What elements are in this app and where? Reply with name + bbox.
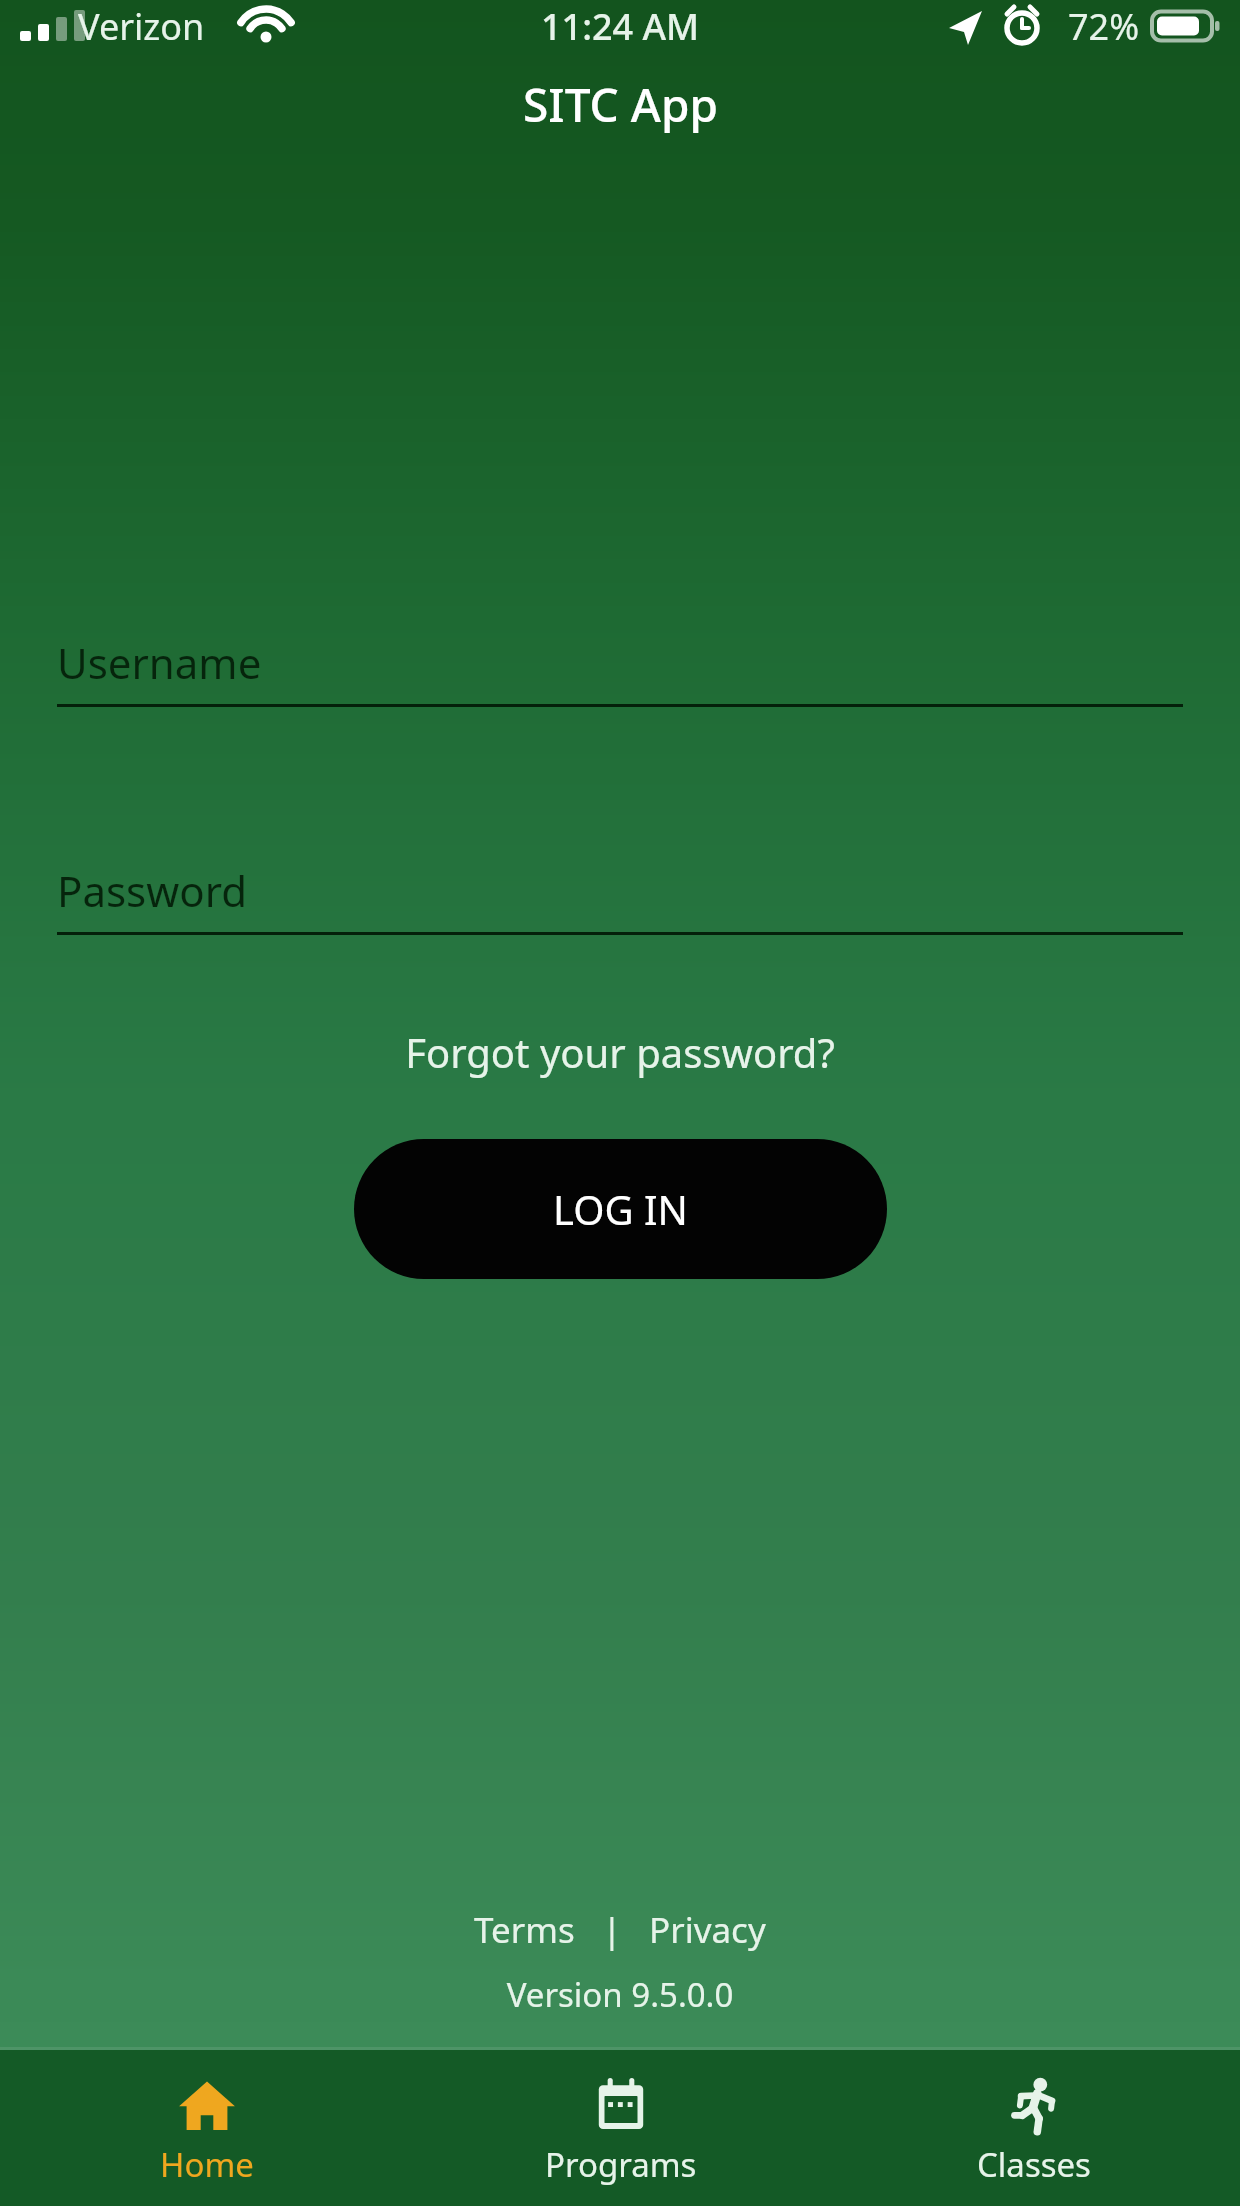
staticText: Username	[57, 634, 262, 691]
staticText: SITC App	[523, 73, 718, 136]
staticText: Terms	[474, 1906, 575, 1954]
staticText: Verizon	[78, 2, 205, 51]
button[interactable]: LOG IN	[354, 1139, 887, 1279]
button[interactable]: Forgot your password?	[0, 1023, 1240, 1081]
staticText: Forgot your password?	[405, 1025, 835, 1079]
staticText: Version 9.5.0.0	[0, 1972, 1240, 2017]
staticText: Privacy	[649, 1906, 766, 1954]
button[interactable]: Classes	[827, 2050, 1240, 2206]
button[interactable]: Terms	[474, 1906, 575, 1954]
other: Programs	[591, 2076, 651, 2136]
button[interactable]: Password	[57, 862, 1183, 935]
staticText: 11:24 AM	[541, 2, 700, 51]
other: Classes	[1004, 2076, 1064, 2136]
staticText: Programs	[545, 2142, 697, 2187]
staticText: Home	[160, 2142, 254, 2187]
button[interactable]: Programs	[414, 2050, 827, 2206]
button[interactable]: Privacy	[649, 1906, 766, 1954]
button[interactable]: Username	[57, 634, 1183, 707]
staticText: LOG IN	[553, 1182, 688, 1236]
staticText: Classes	[977, 2142, 1091, 2187]
staticText: Password	[57, 862, 247, 919]
staticText: 72%	[1068, 2, 1140, 51]
button[interactable]: Home	[0, 2050, 414, 2206]
staticText: |	[575, 1906, 649, 1954]
other: Home	[177, 2076, 237, 2136]
